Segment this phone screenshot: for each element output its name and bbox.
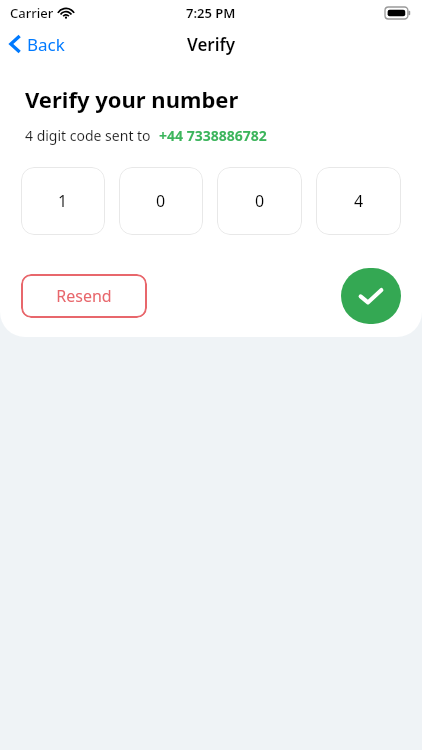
staticText: 1 [58, 190, 68, 212]
staticText: 0 [156, 190, 166, 212]
button[interactable]: Resend [21, 274, 147, 318]
button[interactable]: Confirm [341, 268, 401, 324]
button[interactable]: 0 [217, 167, 302, 235]
staticText: Verify [187, 33, 236, 56]
staticText: 0 [255, 190, 265, 212]
staticText: Resend [56, 285, 112, 307]
button[interactable]: 0 [119, 167, 203, 235]
button[interactable]: 1 [21, 167, 105, 235]
staticText: 4 digit code sent to [25, 126, 151, 145]
button[interactable]: Back [0, 26, 75, 62]
staticText: 4 [354, 190, 364, 212]
staticText: Verify your number [25, 84, 239, 114]
staticText: Carrier [10, 4, 54, 22]
staticText: 7:25 PM [186, 4, 236, 22]
staticText: +44 7338886782 [159, 126, 267, 145]
button[interactable]: 4 [316, 167, 401, 235]
staticText: Back [27, 33, 65, 56]
